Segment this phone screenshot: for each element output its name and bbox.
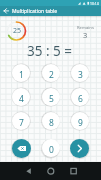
- staticText: 35 : 5 =: [27, 42, 73, 58]
- button[interactable]: 7: [12, 112, 30, 130]
- button[interactable]: 2: [42, 64, 60, 82]
- staticText: 2: [49, 69, 54, 81]
- button[interactable]: 0: [42, 139, 60, 157]
- staticText: 6: [78, 93, 83, 105]
- button[interactable]: 6: [71, 88, 89, 106]
- staticText: 5: [49, 93, 54, 105]
- button[interactable]: 1: [12, 64, 30, 82]
- staticText: Remains: [77, 25, 94, 31]
- staticText: 3: [78, 69, 83, 81]
- button[interactable]: [70, 139, 89, 158]
- staticText: 0: [49, 144, 54, 156]
- staticText: 10:14: [90, 1, 99, 6]
- staticText: 7: [19, 117, 24, 129]
- button[interactable]: 8: [42, 112, 60, 130]
- staticText: 8: [49, 117, 54, 129]
- button[interactable]: 4: [12, 88, 30, 106]
- staticText: 1: [19, 69, 24, 81]
- staticText: 3: [83, 30, 88, 40]
- button[interactable]: 5: [42, 88, 60, 106]
- staticText: Multiplication table: [12, 8, 58, 15]
- button[interactable]: 9: [71, 112, 89, 130]
- staticText: 4: [19, 93, 24, 105]
- staticText: 9: [78, 117, 83, 129]
- staticText: 25: [13, 26, 22, 36]
- button[interactable]: [12, 139, 31, 158]
- button[interactable]: 3: [71, 64, 89, 82]
